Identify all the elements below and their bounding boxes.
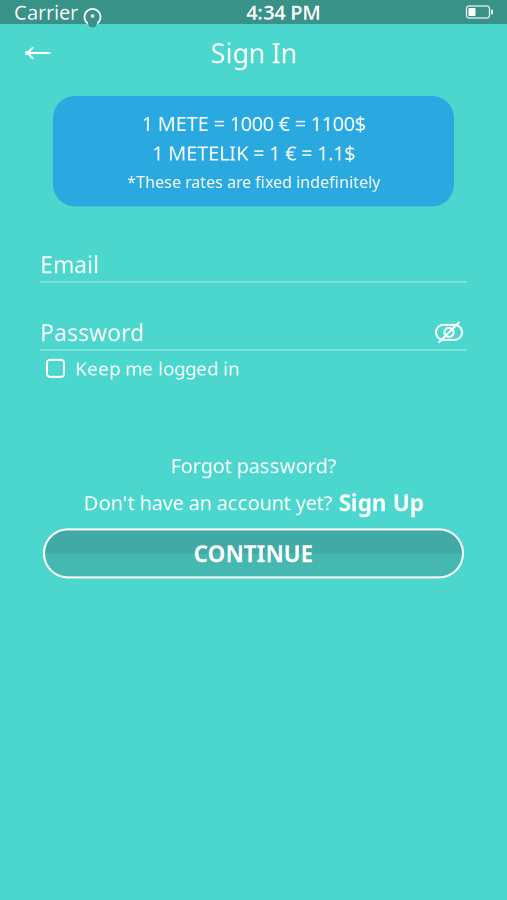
staticText: 1 METE = 1000 € = 1100$ bbox=[141, 110, 365, 137]
staticText: Carrier bbox=[14, 0, 78, 25]
staticText: Email bbox=[40, 249, 99, 279]
staticText: Password bbox=[40, 317, 144, 347]
button[interactable]: Don't have an account yet? bbox=[0, 478, 507, 517]
staticText: CONTINUE bbox=[193, 538, 313, 568]
staticText: Forgot password? bbox=[170, 452, 336, 479]
button[interactable]: Show password bbox=[431, 317, 467, 347]
staticText: 4:34 PM bbox=[246, 0, 321, 25]
staticText: *These rates are fixed indefinitely bbox=[127, 171, 380, 192]
button[interactable]: Forgot password? bbox=[0, 452, 507, 478]
staticText: Keep me logged in bbox=[75, 356, 240, 381]
button[interactable]: Back bbox=[16, 31, 60, 75]
staticText: Sign Up bbox=[338, 487, 423, 517]
button[interactable]: Keep me logged in bbox=[0, 350, 507, 386]
staticText: Sign In bbox=[210, 35, 296, 71]
staticText: 1 METELIK = 1 € = 1.1$ bbox=[152, 140, 355, 166]
button[interactable]: CONTINUE bbox=[0, 529, 507, 577]
staticText: Don't have an account yet? bbox=[83, 489, 332, 516]
